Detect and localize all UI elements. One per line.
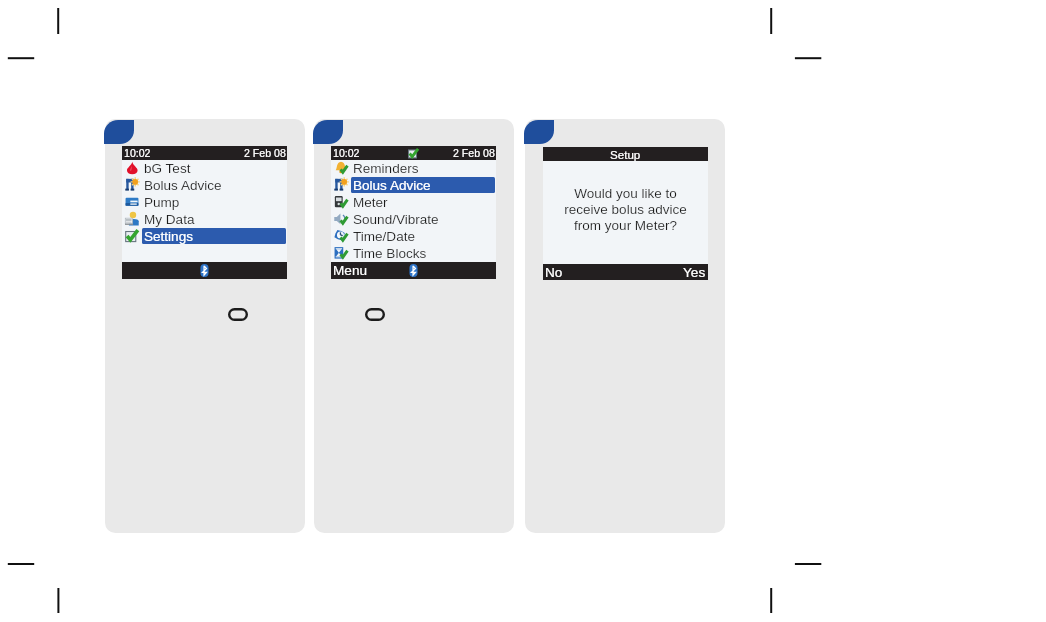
staticText: Sound/Vibrate [353, 212, 439, 227]
other: Bluetooth [409, 264, 418, 277]
staticText: 10:02 [333, 147, 360, 159]
other: Bluetooth [200, 264, 209, 277]
button[interactable]: OK button [365, 306, 385, 323]
button[interactable]: Reminders [331, 159, 496, 176]
staticText: 2 Feb 08 [244, 147, 286, 159]
button[interactable]: Sound/Vibrate [331, 210, 496, 227]
staticText: Bolus Advice [144, 178, 222, 193]
staticText: Bolus Advice [353, 178, 431, 193]
staticText: Yes [683, 265, 706, 280]
staticText: Setup [610, 148, 641, 161]
staticText: My Data [144, 212, 195, 227]
button[interactable]: Menu [331, 263, 374, 278]
button[interactable]: bG Test [122, 159, 287, 176]
staticText: Time/Date [353, 229, 415, 244]
button[interactable]: Yes [677, 265, 708, 280]
button[interactable]: My Data [122, 210, 287, 227]
staticText: 2 Feb 08 [453, 147, 495, 159]
staticText: Menu [333, 263, 368, 278]
button[interactable]: Time Blocks [331, 244, 496, 261]
staticText: Would you like to receive bolus advice f… [564, 186, 687, 232]
button[interactable]: Bolus Advice [122, 176, 287, 193]
staticText: No [545, 265, 563, 280]
button[interactable]: OK button [228, 306, 248, 323]
staticText: Pump [144, 195, 180, 210]
staticText: Reminders [353, 161, 419, 176]
button[interactable]: Pump [122, 193, 287, 210]
staticText: Meter [353, 195, 388, 210]
button[interactable]: Settings [122, 227, 287, 244]
button[interactable]: Bolus Advice [331, 176, 496, 193]
staticText: 10:02 [124, 147, 151, 159]
button[interactable]: No [543, 265, 569, 280]
button[interactable]: Meter [331, 193, 496, 210]
button[interactable]: Time/Date [331, 227, 496, 244]
staticText: Time Blocks [353, 246, 427, 261]
staticText: bG Test [144, 161, 191, 176]
staticText: Settings [144, 229, 193, 244]
